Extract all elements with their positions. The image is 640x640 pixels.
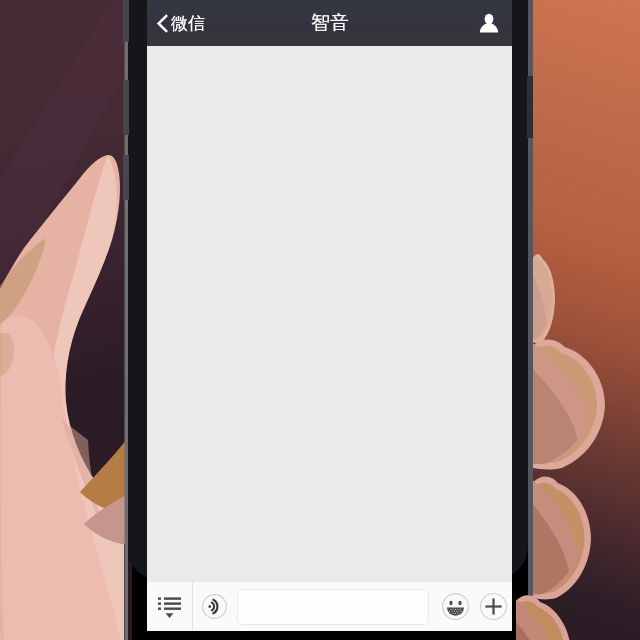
button[interactable]: 微信 xyxy=(157,0,205,46)
button[interactable]: Chat menu xyxy=(147,582,192,631)
button[interactable]: Contact profile xyxy=(465,0,512,46)
staticText: 微信 xyxy=(171,13,205,34)
button[interactable]: Emoji xyxy=(437,582,474,631)
button[interactable]: More options xyxy=(474,582,512,631)
staticText: 智音 xyxy=(311,11,349,35)
button[interactable]: Voice input xyxy=(193,582,235,631)
button[interactable] xyxy=(237,589,429,625)
